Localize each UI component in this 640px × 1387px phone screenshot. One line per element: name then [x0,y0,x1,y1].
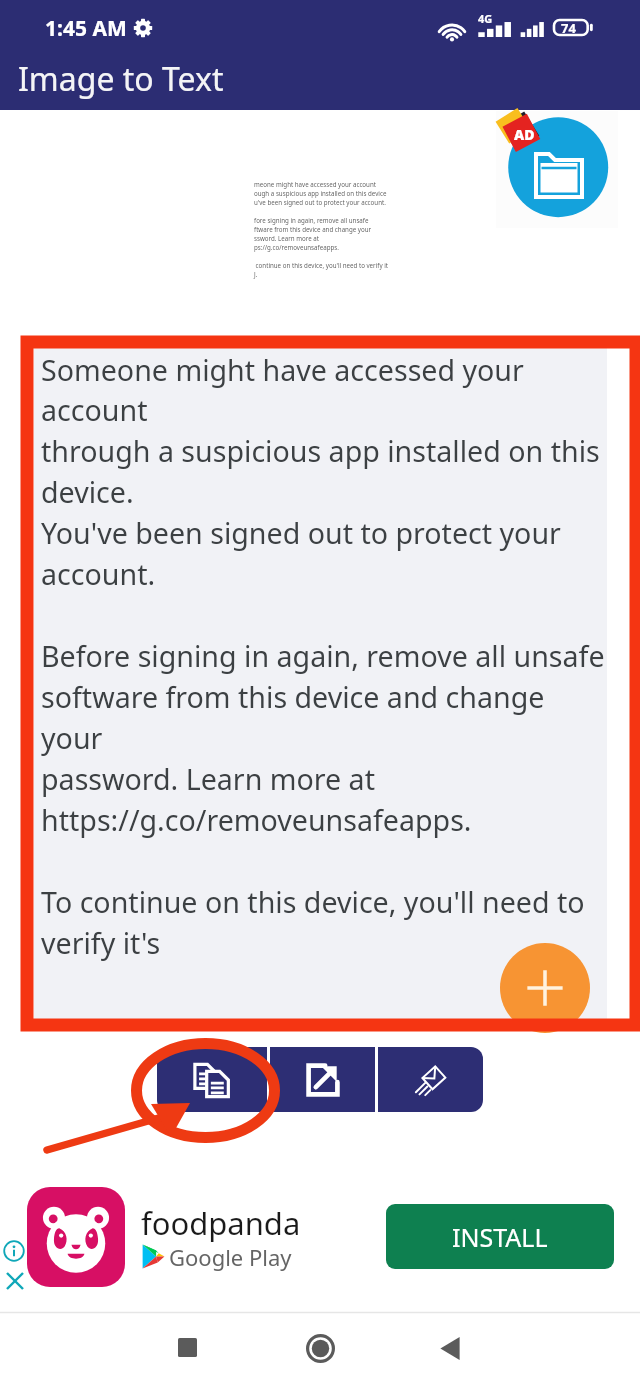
staticText: foodpanda [141,1202,301,1244]
button[interactable]: Copy [157,1047,267,1112]
staticText: Google Play [169,1242,292,1272]
staticText: 74 [561,19,576,36]
button[interactable]: Back [422,1320,478,1376]
staticText: meone might have accessed your account o… [254,180,388,279]
button[interactable]: Ad information [3,1240,25,1262]
button[interactable]: Add [500,943,590,1033]
button[interactable]: Advertisement [496,111,618,228]
staticText: 1:45 AM [45,14,127,43]
staticText: AD [514,125,535,144]
button[interactable]: Share [270,1047,375,1112]
staticText: Someone might have accessed your account… [41,350,605,962]
button[interactable]: Close ad [3,1269,27,1293]
staticText: 4G [478,11,493,26]
button[interactable]: Home [292,1320,348,1376]
staticText: Image to Text [18,57,224,101]
button[interactable]: Recents [159,1319,215,1375]
staticText: INSTALL [452,1220,548,1254]
button[interactable]: INSTALL [386,1204,614,1269]
button[interactable]: foodpanda advertisement [0,1157,640,1312]
button[interactable]: Send email [378,1047,483,1112]
